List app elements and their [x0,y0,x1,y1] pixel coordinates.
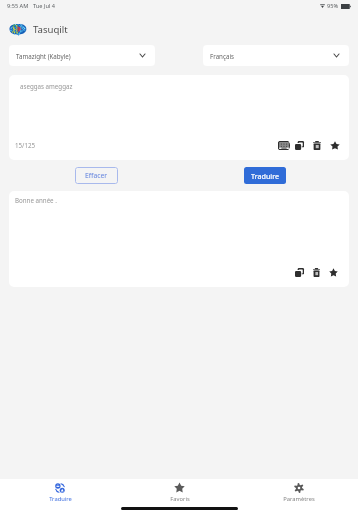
staticText: 9:55 AM [7,2,29,10]
button[interactable]: Keyboard [277,139,290,152]
staticText: aseggas ameggaz [20,82,73,90]
button[interactable]: Tamazight (Kabyle) [9,45,155,66]
button[interactable]: Delete [310,139,323,152]
staticText: Français [210,52,234,60]
staticText: Tasuqilt [33,23,68,36]
button[interactable]: Copy [293,139,306,152]
button[interactable]: Copy [293,266,306,279]
staticText: Favoris [170,495,190,503]
staticText: 15/125 [15,141,35,149]
button[interactable]: Favoris [120,479,239,506]
button[interactable]: Français [203,45,349,66]
button[interactable]: Traduire [244,167,286,184]
staticText: Tue Jul 4 [33,2,55,10]
staticText: Effacer [85,171,108,180]
button[interactable]: Effacer [75,167,118,184]
staticText: Traduire [251,171,280,181]
button[interactable]: Favorite [328,139,341,152]
staticText: 95% [327,2,339,10]
staticText: Paramètres [283,495,315,503]
staticText: Traduire [49,495,72,503]
button[interactable]: Favorite [327,266,340,279]
button[interactable]: Traduire [0,479,120,506]
staticText: Bonne année . [15,196,57,204]
button[interactable]: Delete [310,266,323,279]
staticText: Tamazight (Kabyle) [16,52,71,60]
button[interactable]: Paramètres [239,479,358,506]
